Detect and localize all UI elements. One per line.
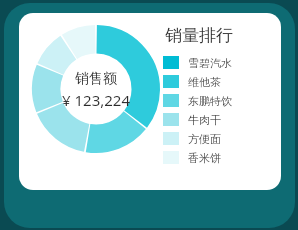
button[interactable]: 香米饼	[163, 148, 271, 167]
staticText: 雪碧汽水	[188, 56, 232, 70]
button[interactable]: Sales amount donut chart	[19, 13, 281, 190]
staticText: 牛肉干	[188, 113, 221, 127]
staticText: 维他茶	[188, 75, 221, 89]
button[interactable]: 牛肉干	[163, 110, 271, 129]
button[interactable]: 东鹏特饮	[163, 91, 271, 110]
button[interactable]: Sales amount donut chart	[24, 17, 168, 161]
staticText: ¥ 123,224	[62, 90, 130, 110]
staticText: 销量排行	[165, 25, 233, 46]
button[interactable]: 方便面	[163, 129, 271, 148]
button[interactable]: 雪碧汽水	[163, 53, 271, 72]
staticText: 销售额	[75, 70, 117, 88]
button[interactable]: 维他茶	[163, 72, 271, 91]
staticText: 方便面	[188, 132, 221, 146]
staticText: 东鹏特饮	[188, 94, 232, 108]
staticText: 香米饼	[188, 151, 221, 165]
